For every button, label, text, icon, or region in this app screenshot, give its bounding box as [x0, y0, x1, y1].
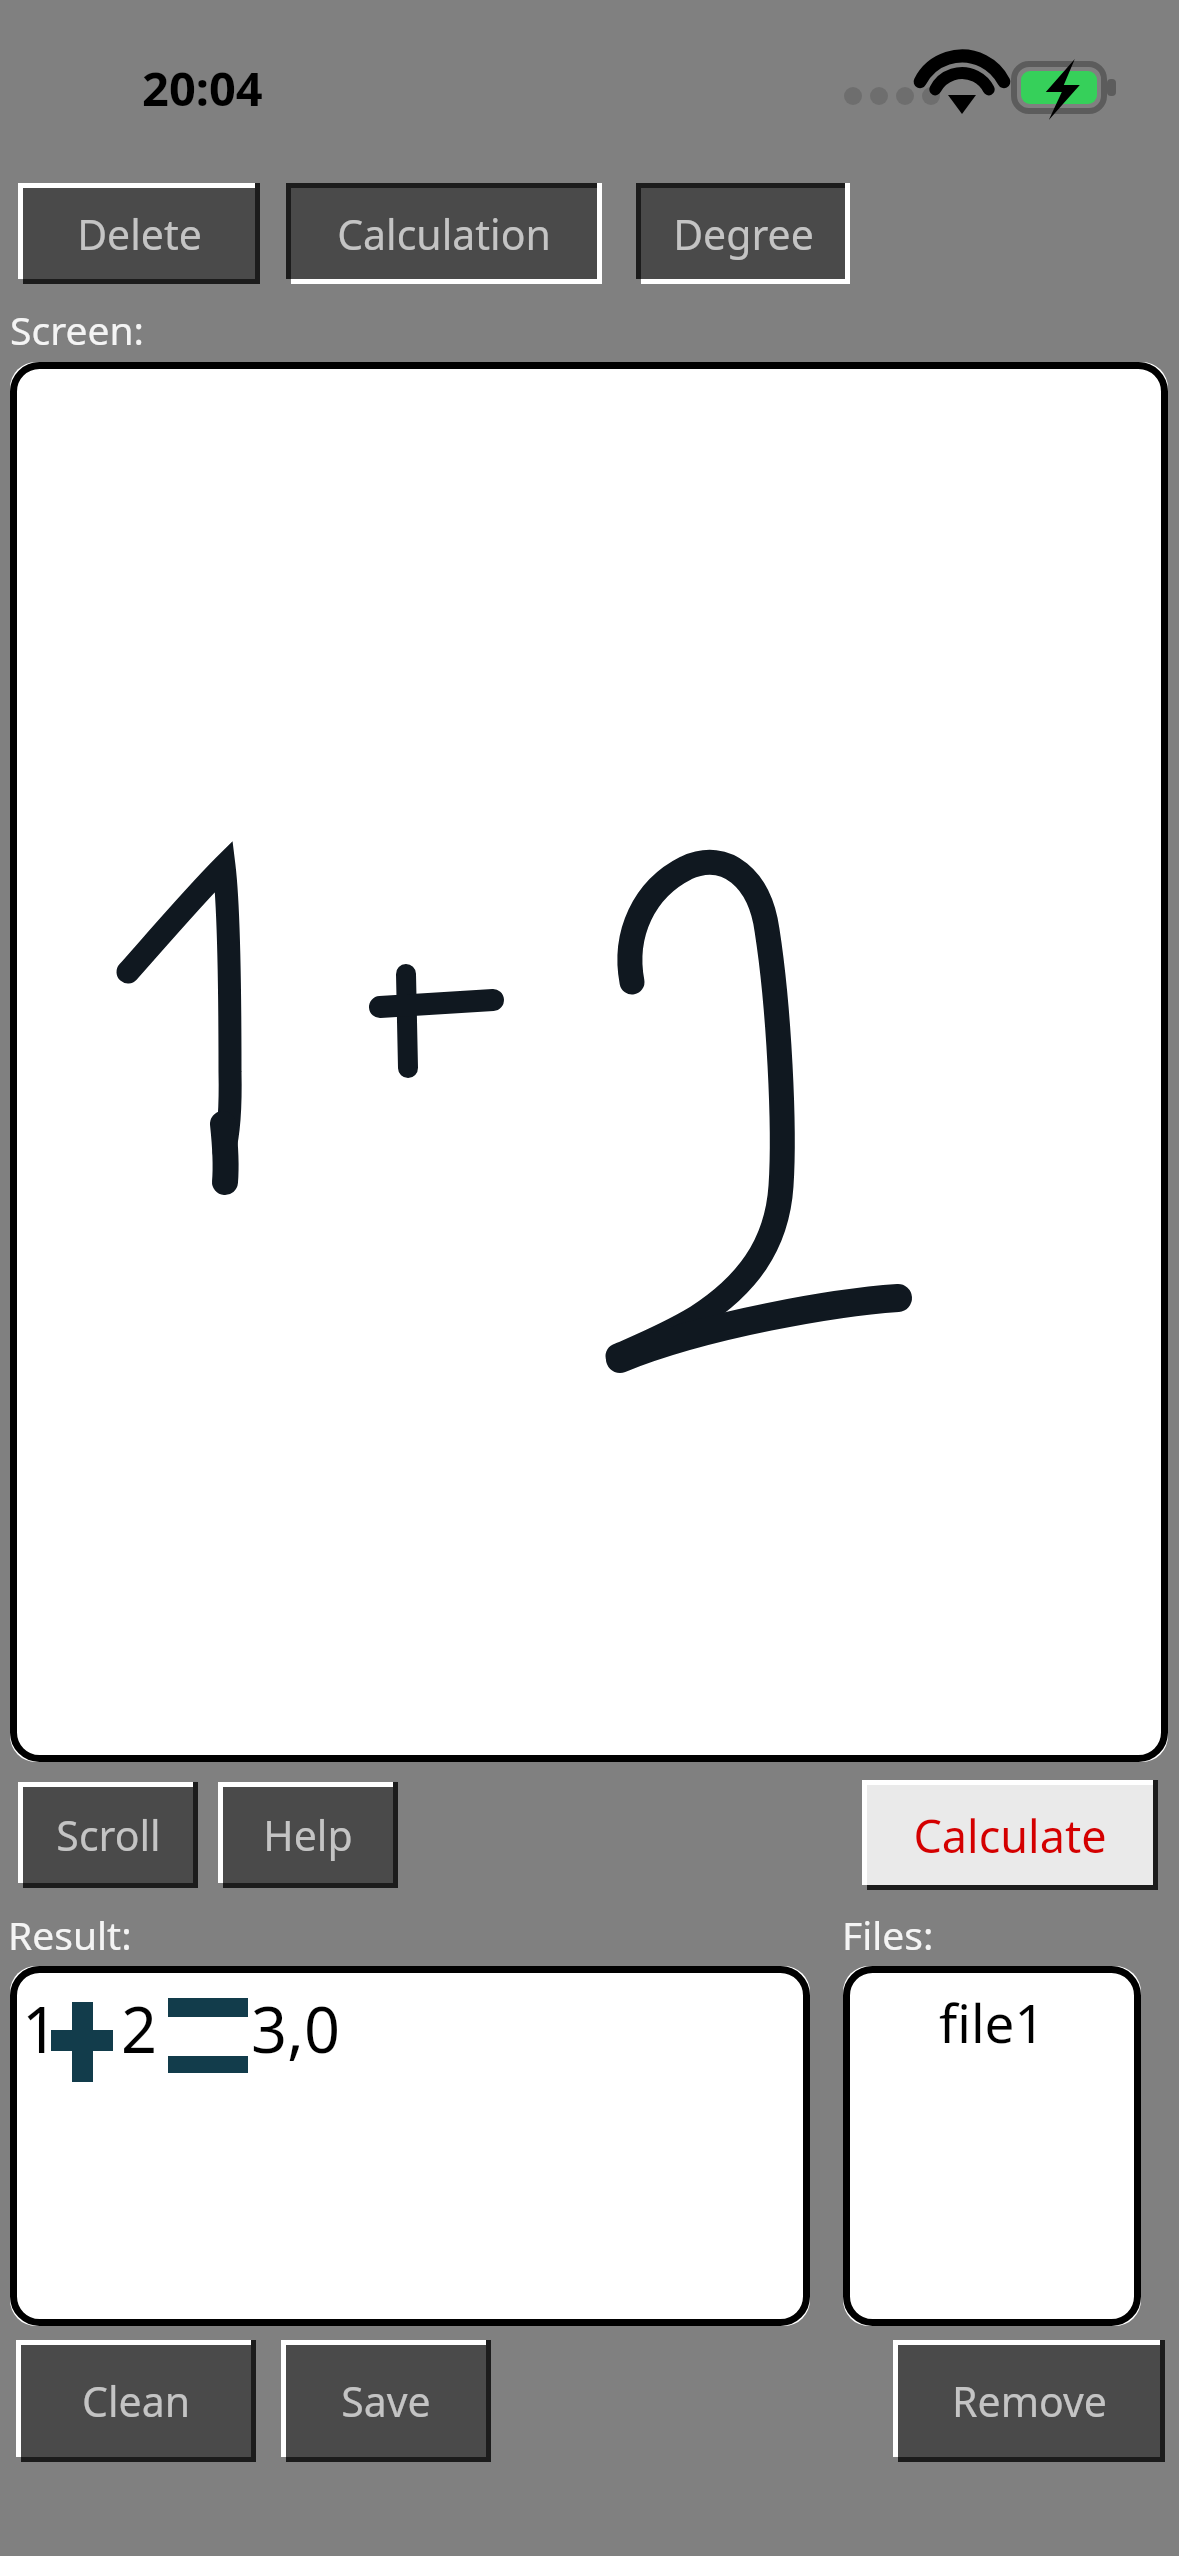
staticText: file1: [939, 1986, 1045, 2058]
button[interactable]: Result output: [10, 1966, 810, 2326]
staticText: Save: [341, 2373, 431, 2429]
staticText: Scroll: [56, 1807, 161, 1863]
staticText: Clean: [82, 2373, 190, 2429]
staticText: Files:: [842, 1908, 934, 1961]
button[interactable]: Handwriting input area: [10, 362, 1168, 1762]
staticText: Calculate: [913, 1805, 1107, 1866]
staticText: 1: [22, 1986, 59, 2072]
button[interactable]: Degree: [636, 183, 850, 284]
button[interactable]: Save: [281, 2340, 491, 2462]
button[interactable]: Calculate: [862, 1780, 1158, 1890]
button[interactable]: Delete: [18, 183, 260, 284]
staticText: Delete: [77, 206, 202, 262]
button[interactable]: Clean: [16, 2340, 256, 2462]
button[interactable]: Remove: [893, 2340, 1165, 2462]
staticText: Result:: [8, 1908, 132, 1961]
staticText: Help: [263, 1807, 353, 1863]
staticText: 3,0: [251, 1986, 340, 2072]
button[interactable]: Saved files list: [843, 1966, 1141, 2326]
staticText: Calculation: [337, 206, 551, 262]
staticText: Remove: [952, 2373, 1107, 2429]
button[interactable]: Calculation: [286, 183, 602, 284]
staticText: Screen:: [10, 303, 145, 356]
staticText: 2: [121, 1986, 158, 2072]
button[interactable]: Scroll: [18, 1782, 198, 1888]
staticText: 20:04: [142, 56, 263, 120]
button[interactable]: Help: [218, 1782, 398, 1888]
staticText: Degree: [673, 206, 814, 262]
